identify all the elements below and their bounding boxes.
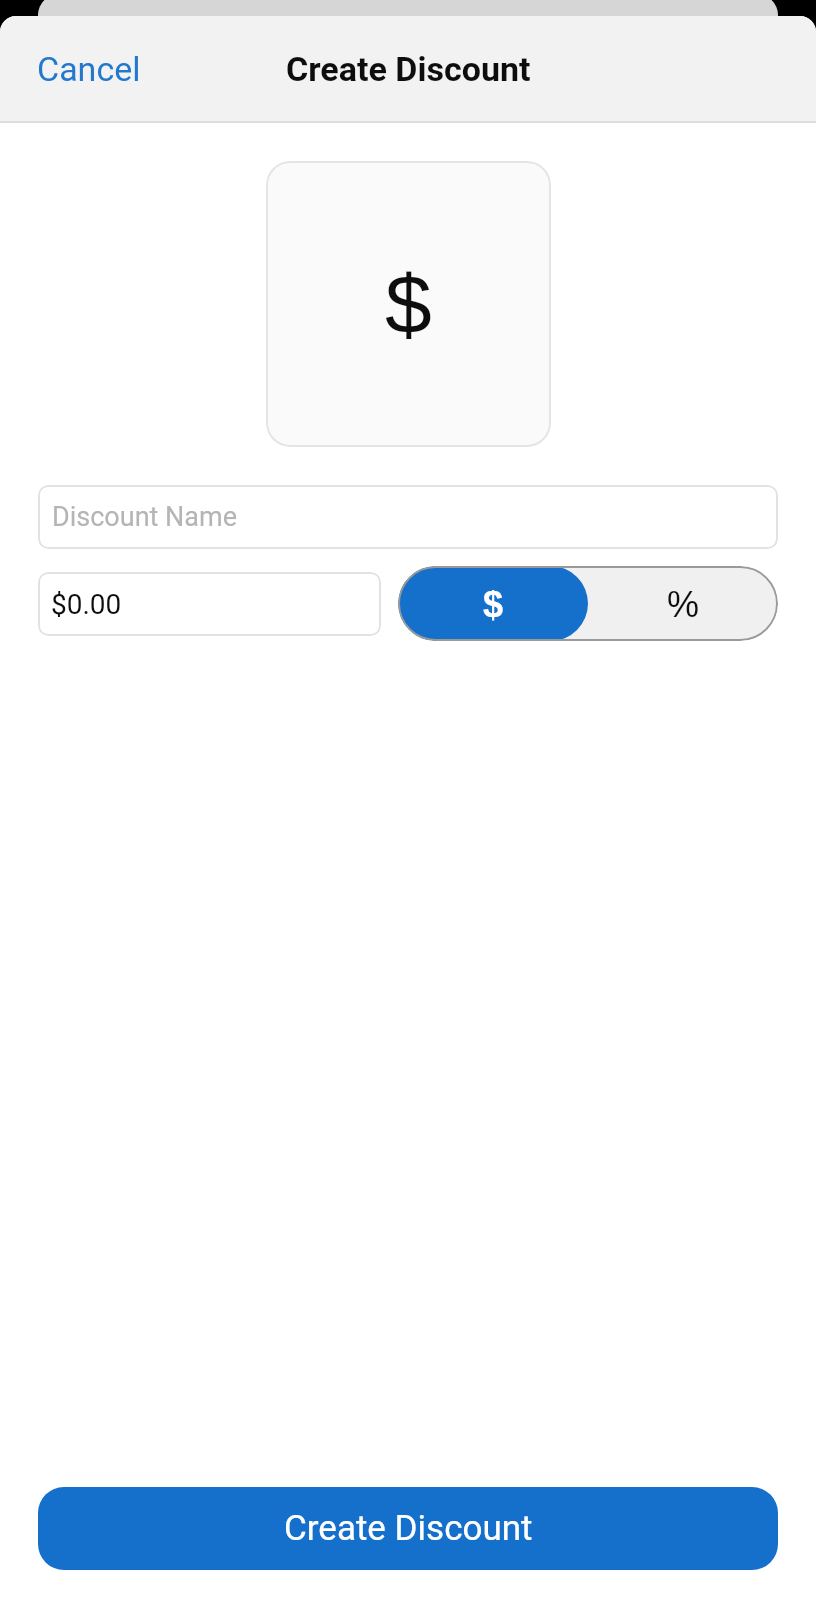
button[interactable]: Create Discount bbox=[38, 1487, 778, 1570]
staticText: Create Discount bbox=[284, 1508, 533, 1549]
staticText: % bbox=[667, 584, 700, 624]
staticText: Create Discount bbox=[286, 49, 531, 89]
button[interactable]: Add discount image bbox=[266, 161, 551, 447]
button[interactable]: Discount Name bbox=[38, 485, 778, 549]
staticText: Discount Name bbox=[52, 501, 238, 533]
staticText: Cancel bbox=[37, 49, 141, 89]
button[interactable]: $ bbox=[398, 566, 588, 641]
button[interactable]: Cancel bbox=[0, 27, 178, 111]
button[interactable]: $0.00 bbox=[38, 572, 381, 636]
button[interactable]: % bbox=[588, 566, 778, 641]
staticText: $0.00 bbox=[51, 588, 122, 621]
staticText: $ bbox=[385, 257, 432, 351]
staticText: $ bbox=[483, 584, 504, 624]
